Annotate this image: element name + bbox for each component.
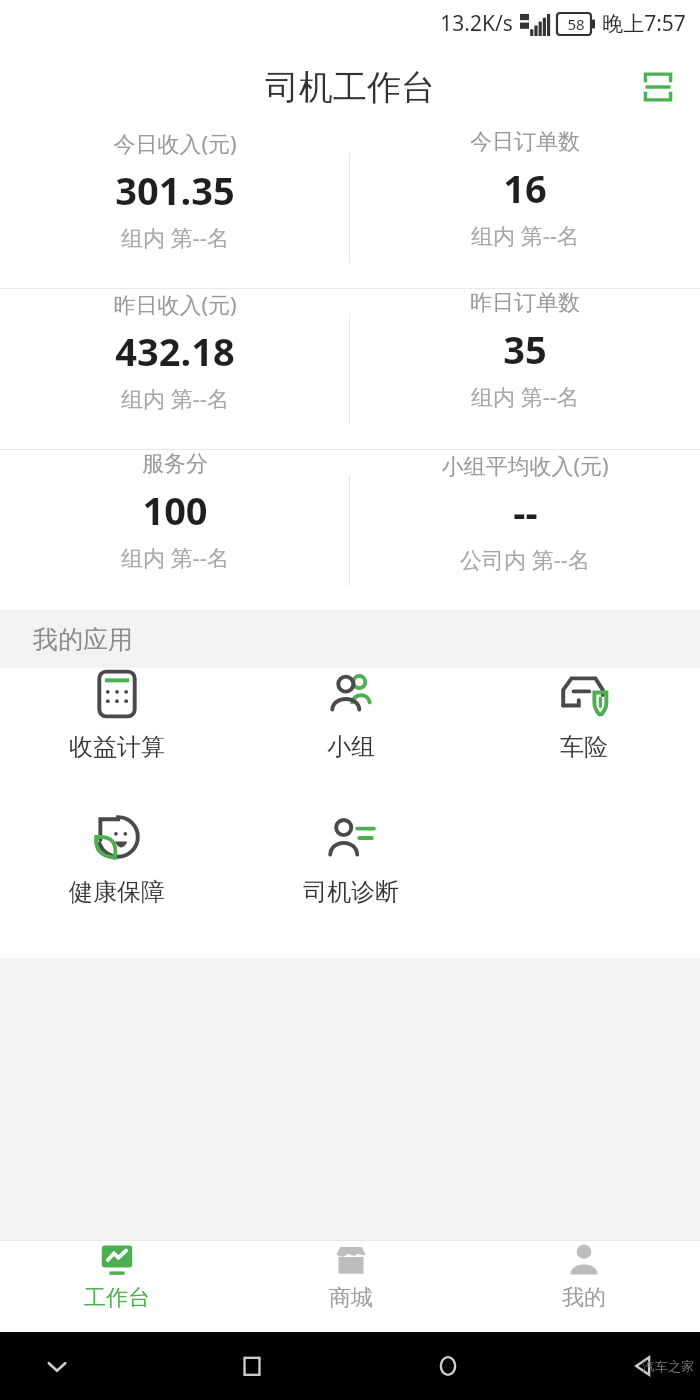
staticText: 公司内 第--名 (460, 544, 590, 574)
staticText: 组内 第--名 (121, 222, 229, 252)
button[interactable]: 昨日订单数 (350, 289, 700, 411)
other: Home (431, 1349, 465, 1383)
button[interactable]: 工作台 (0, 1241, 234, 1312)
other: Recents (235, 1349, 269, 1383)
other: Hide (40, 1349, 74, 1383)
other: Back (626, 1349, 660, 1383)
staticText: 58 (567, 14, 585, 34)
staticText: 今日收入(元) (113, 128, 237, 158)
button[interactable]: 健康保障 (0, 813, 234, 907)
staticText: 小组 (327, 732, 375, 762)
staticText: 昨日订单数 (470, 289, 580, 317)
staticText: 432.18 (115, 325, 235, 377)
button[interactable]: 商城 (234, 1241, 467, 1312)
button[interactable]: 小组平均收入(元) (350, 450, 700, 574)
staticText: 100 (142, 484, 208, 536)
staticText: 组内 第--名 (121, 383, 229, 413)
staticText: 今日订单数 (470, 128, 580, 156)
staticText: 司机诊断 (303, 877, 399, 907)
button[interactable]: 昨日收入(元) (0, 289, 349, 413)
staticText: 车险 (560, 732, 608, 762)
button[interactable]: 切换视图 (634, 63, 682, 111)
button[interactable]: 车险 (467, 668, 700, 762)
staticText: 昨日收入(元) (113, 289, 237, 319)
staticText: 服务分 (142, 450, 208, 478)
staticText: 司机工作台 (265, 66, 435, 109)
button[interactable]: 服务分 (0, 450, 349, 572)
staticText: 16 (503, 162, 547, 214)
staticText: 13.2K/s (440, 9, 513, 38)
button[interactable]: 收益计算 (0, 668, 234, 762)
staticText: -- (513, 486, 538, 538)
staticText: 健康保障 (69, 877, 165, 907)
staticText: 商城 (329, 1284, 373, 1312)
staticText: 收益计算 (69, 732, 165, 762)
button[interactable]: 我的 (467, 1241, 700, 1312)
staticText: 组内 第--名 (471, 220, 579, 250)
staticText: 汽车之家 (642, 1358, 694, 1374)
button[interactable]: 今日收入(元) (0, 128, 349, 252)
button[interactable]: 今日订单数 (350, 128, 700, 250)
staticText: 晚上7:57 (602, 9, 686, 38)
staticText: 工作台 (84, 1284, 150, 1312)
staticText: 我的 (562, 1284, 606, 1312)
staticText: 我的应用 (33, 624, 133, 655)
staticText: 35 (503, 323, 547, 375)
button[interactable]: 小组 (234, 668, 467, 762)
staticText: 组内 第--名 (471, 381, 579, 411)
staticText: 301.35 (115, 164, 235, 216)
staticText: 组内 第--名 (121, 542, 229, 572)
button[interactable]: 司机诊断 (234, 813, 467, 907)
staticText: 小组平均收入(元) (441, 450, 609, 480)
